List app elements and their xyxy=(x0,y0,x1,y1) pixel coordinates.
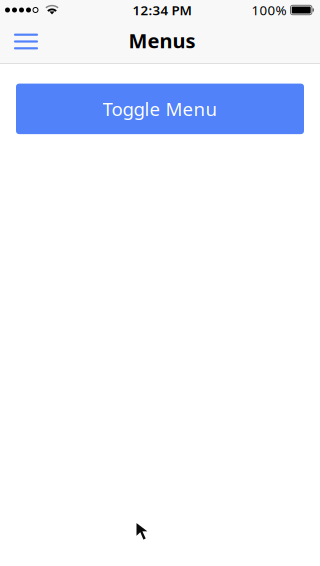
staticText: 12:34 PM xyxy=(132,1,191,19)
button[interactable]: Menu xyxy=(4,20,48,63)
staticText: Menus xyxy=(128,27,195,54)
staticText: 100% xyxy=(251,1,286,19)
staticText: Toggle Menu xyxy=(102,96,217,121)
button[interactable]: Toggle Menu xyxy=(16,84,304,134)
